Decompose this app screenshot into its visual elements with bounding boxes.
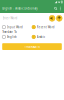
staticText: English - Arabic Dictionary [2,7,37,10]
staticText: Enter Word [2,16,17,20]
button[interactable]: English [2,34,32,40]
staticText: Arabic [37,35,45,39]
button[interactable]: More options [58,6,62,11]
staticText: English [7,35,17,39]
button[interactable]: Voice input [56,15,62,21]
button[interactable]: Input Word [2,24,32,30]
staticText: Input Word [7,25,23,29]
staticText: Recent Word [37,25,55,29]
button[interactable]: Speak word [49,15,55,21]
button[interactable]: Arabic [32,34,62,40]
button[interactable]: Recent Word [32,24,62,30]
button[interactable]: Search [53,6,58,11]
staticText: TRANSLATE [24,45,39,48]
staticText: Translate To [2,30,17,34]
button[interactable]: TRANSLATE [2,43,62,50]
